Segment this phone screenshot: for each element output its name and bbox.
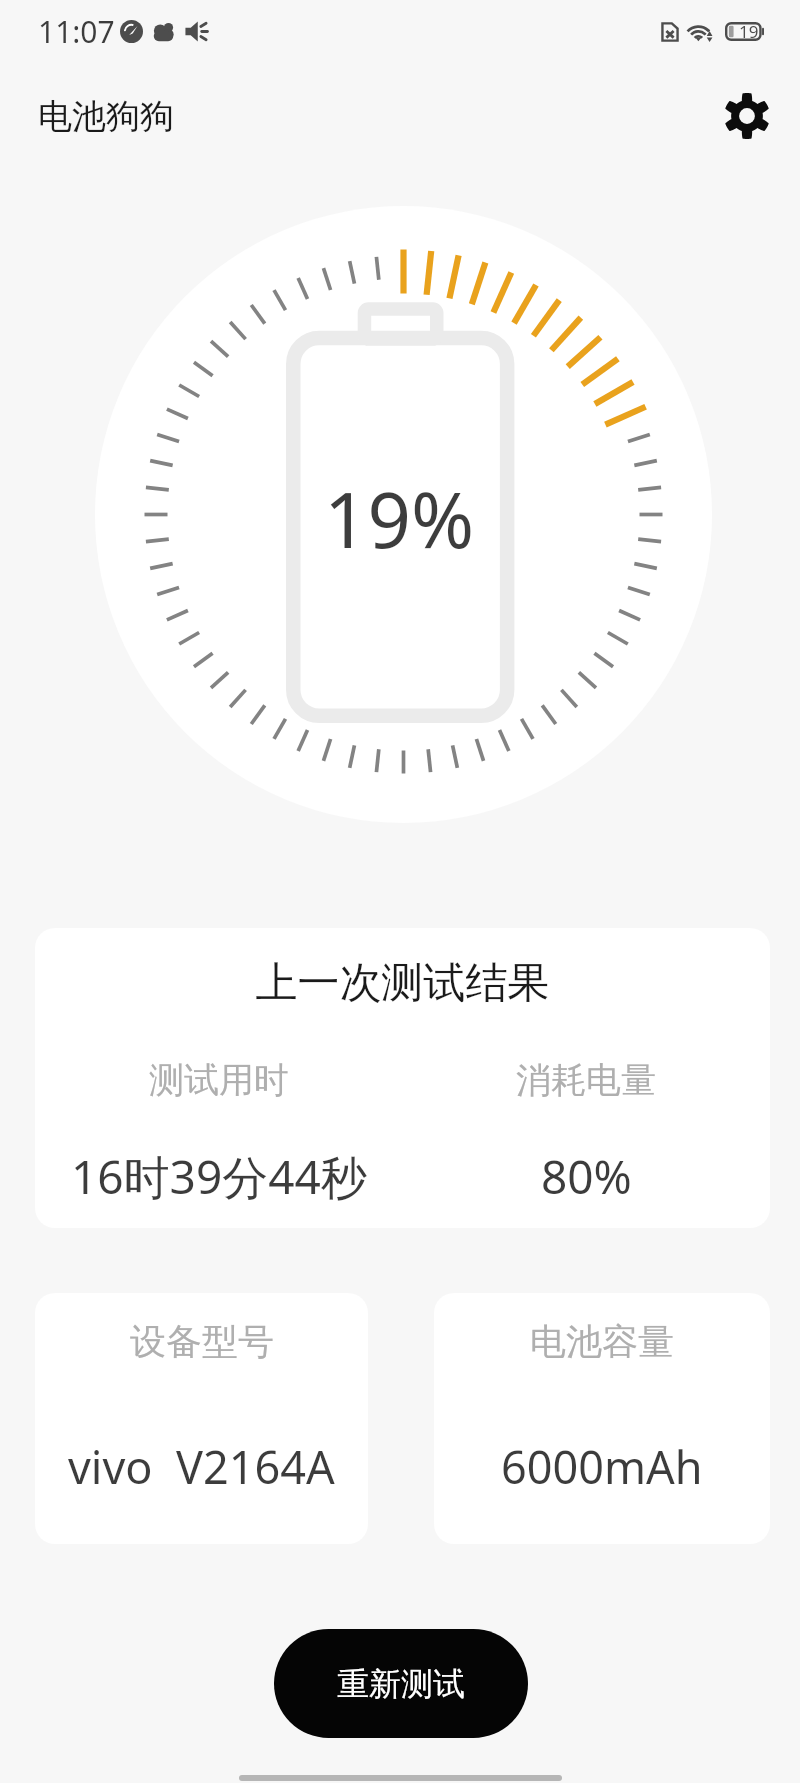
staticText: 重新测试 bbox=[337, 1664, 465, 1704]
staticText: 11:07 bbox=[38, 11, 115, 52]
staticText: 19 bbox=[739, 20, 759, 43]
staticText: 电池容量 bbox=[530, 1319, 674, 1364]
staticText: 测试用时 bbox=[149, 1058, 289, 1102]
staticText: 19% bbox=[324, 467, 475, 571]
staticText: 6000mAh bbox=[501, 1436, 703, 1497]
button[interactable]: 上一次测试结果 bbox=[35, 928, 770, 1228]
staticText: vivo V2164A bbox=[68, 1436, 335, 1497]
button[interactable]: 重新测试 bbox=[274, 1629, 528, 1738]
staticText: 消耗电量 bbox=[516, 1058, 656, 1102]
staticText: 上一次测试结果 bbox=[35, 957, 770, 1010]
staticText: 16时39分44秒 bbox=[71, 1145, 367, 1208]
button[interactable]: 设备型号 bbox=[35, 1293, 368, 1544]
button[interactable]: 电池容量 bbox=[434, 1293, 770, 1544]
staticText: 设备型号 bbox=[130, 1319, 274, 1364]
staticText: 80% bbox=[541, 1145, 632, 1208]
button[interactable]: Settings bbox=[717, 86, 777, 146]
staticText: 电池狗狗 bbox=[38, 95, 174, 138]
